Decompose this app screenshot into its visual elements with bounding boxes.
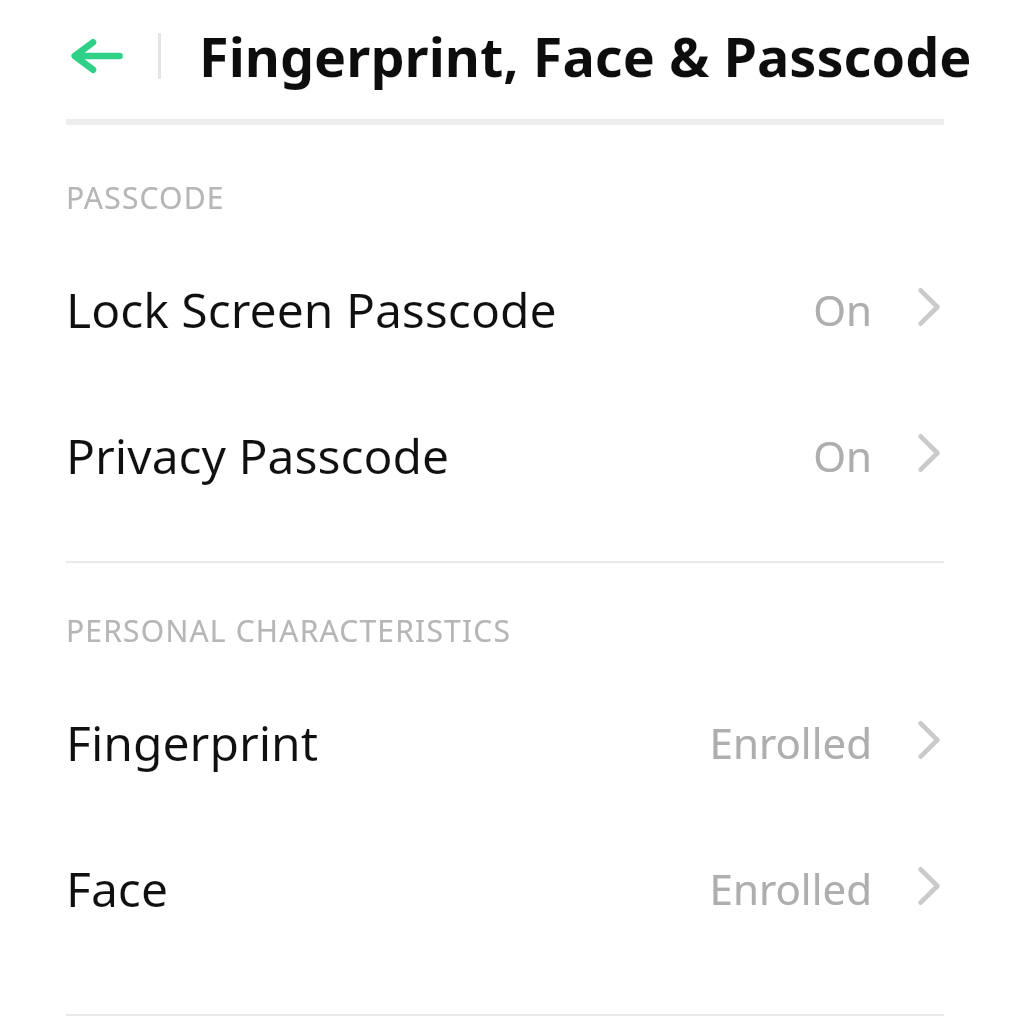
- staticText: Enrolled: [709, 714, 872, 771]
- button[interactable]: Back: [66, 27, 126, 85]
- staticText: On: [813, 427, 872, 484]
- staticText: Lock Screen Passcode: [66, 277, 557, 342]
- staticText: Privacy Passcode: [66, 423, 450, 488]
- staticText: PASSCODE: [66, 177, 225, 218]
- staticText: Fingerprint, Face & Passcode: [199, 19, 972, 93]
- button[interactable]: Fingerprint: [0, 705, 1010, 779]
- button[interactable]: Face: [0, 851, 1010, 925]
- button[interactable]: Privacy Passcode: [0, 418, 1010, 492]
- staticText: Face: [66, 856, 168, 921]
- button[interactable]: Lock Screen Passcode: [0, 272, 1010, 346]
- staticText: On: [813, 281, 872, 338]
- staticText: Enrolled: [709, 860, 872, 917]
- staticText: Fingerprint: [66, 710, 319, 775]
- staticText: PERSONAL CHARACTERISTICS: [66, 610, 512, 651]
